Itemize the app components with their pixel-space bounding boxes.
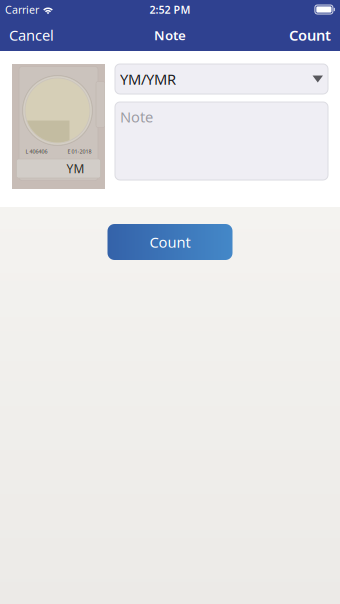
staticText: Count xyxy=(289,25,331,45)
staticText: L 406406 xyxy=(25,148,47,155)
button[interactable]: Cancel xyxy=(0,19,62,51)
staticText: Note xyxy=(120,107,153,126)
staticText: Cancel xyxy=(9,25,54,45)
staticText: YM/YMR xyxy=(120,69,176,89)
staticText: Note xyxy=(154,26,186,44)
button[interactable]: Count xyxy=(281,19,340,51)
button[interactable]: Count xyxy=(107,224,232,260)
staticText: 2:52 PM xyxy=(149,2,190,17)
staticText: Count xyxy=(149,232,190,252)
button[interactable]: YM/YMR xyxy=(115,64,328,94)
staticText: YM xyxy=(66,160,84,176)
button[interactable]: Note xyxy=(115,102,328,180)
staticText: Carrier xyxy=(5,2,39,17)
staticText: E 01-2018 xyxy=(67,148,91,155)
